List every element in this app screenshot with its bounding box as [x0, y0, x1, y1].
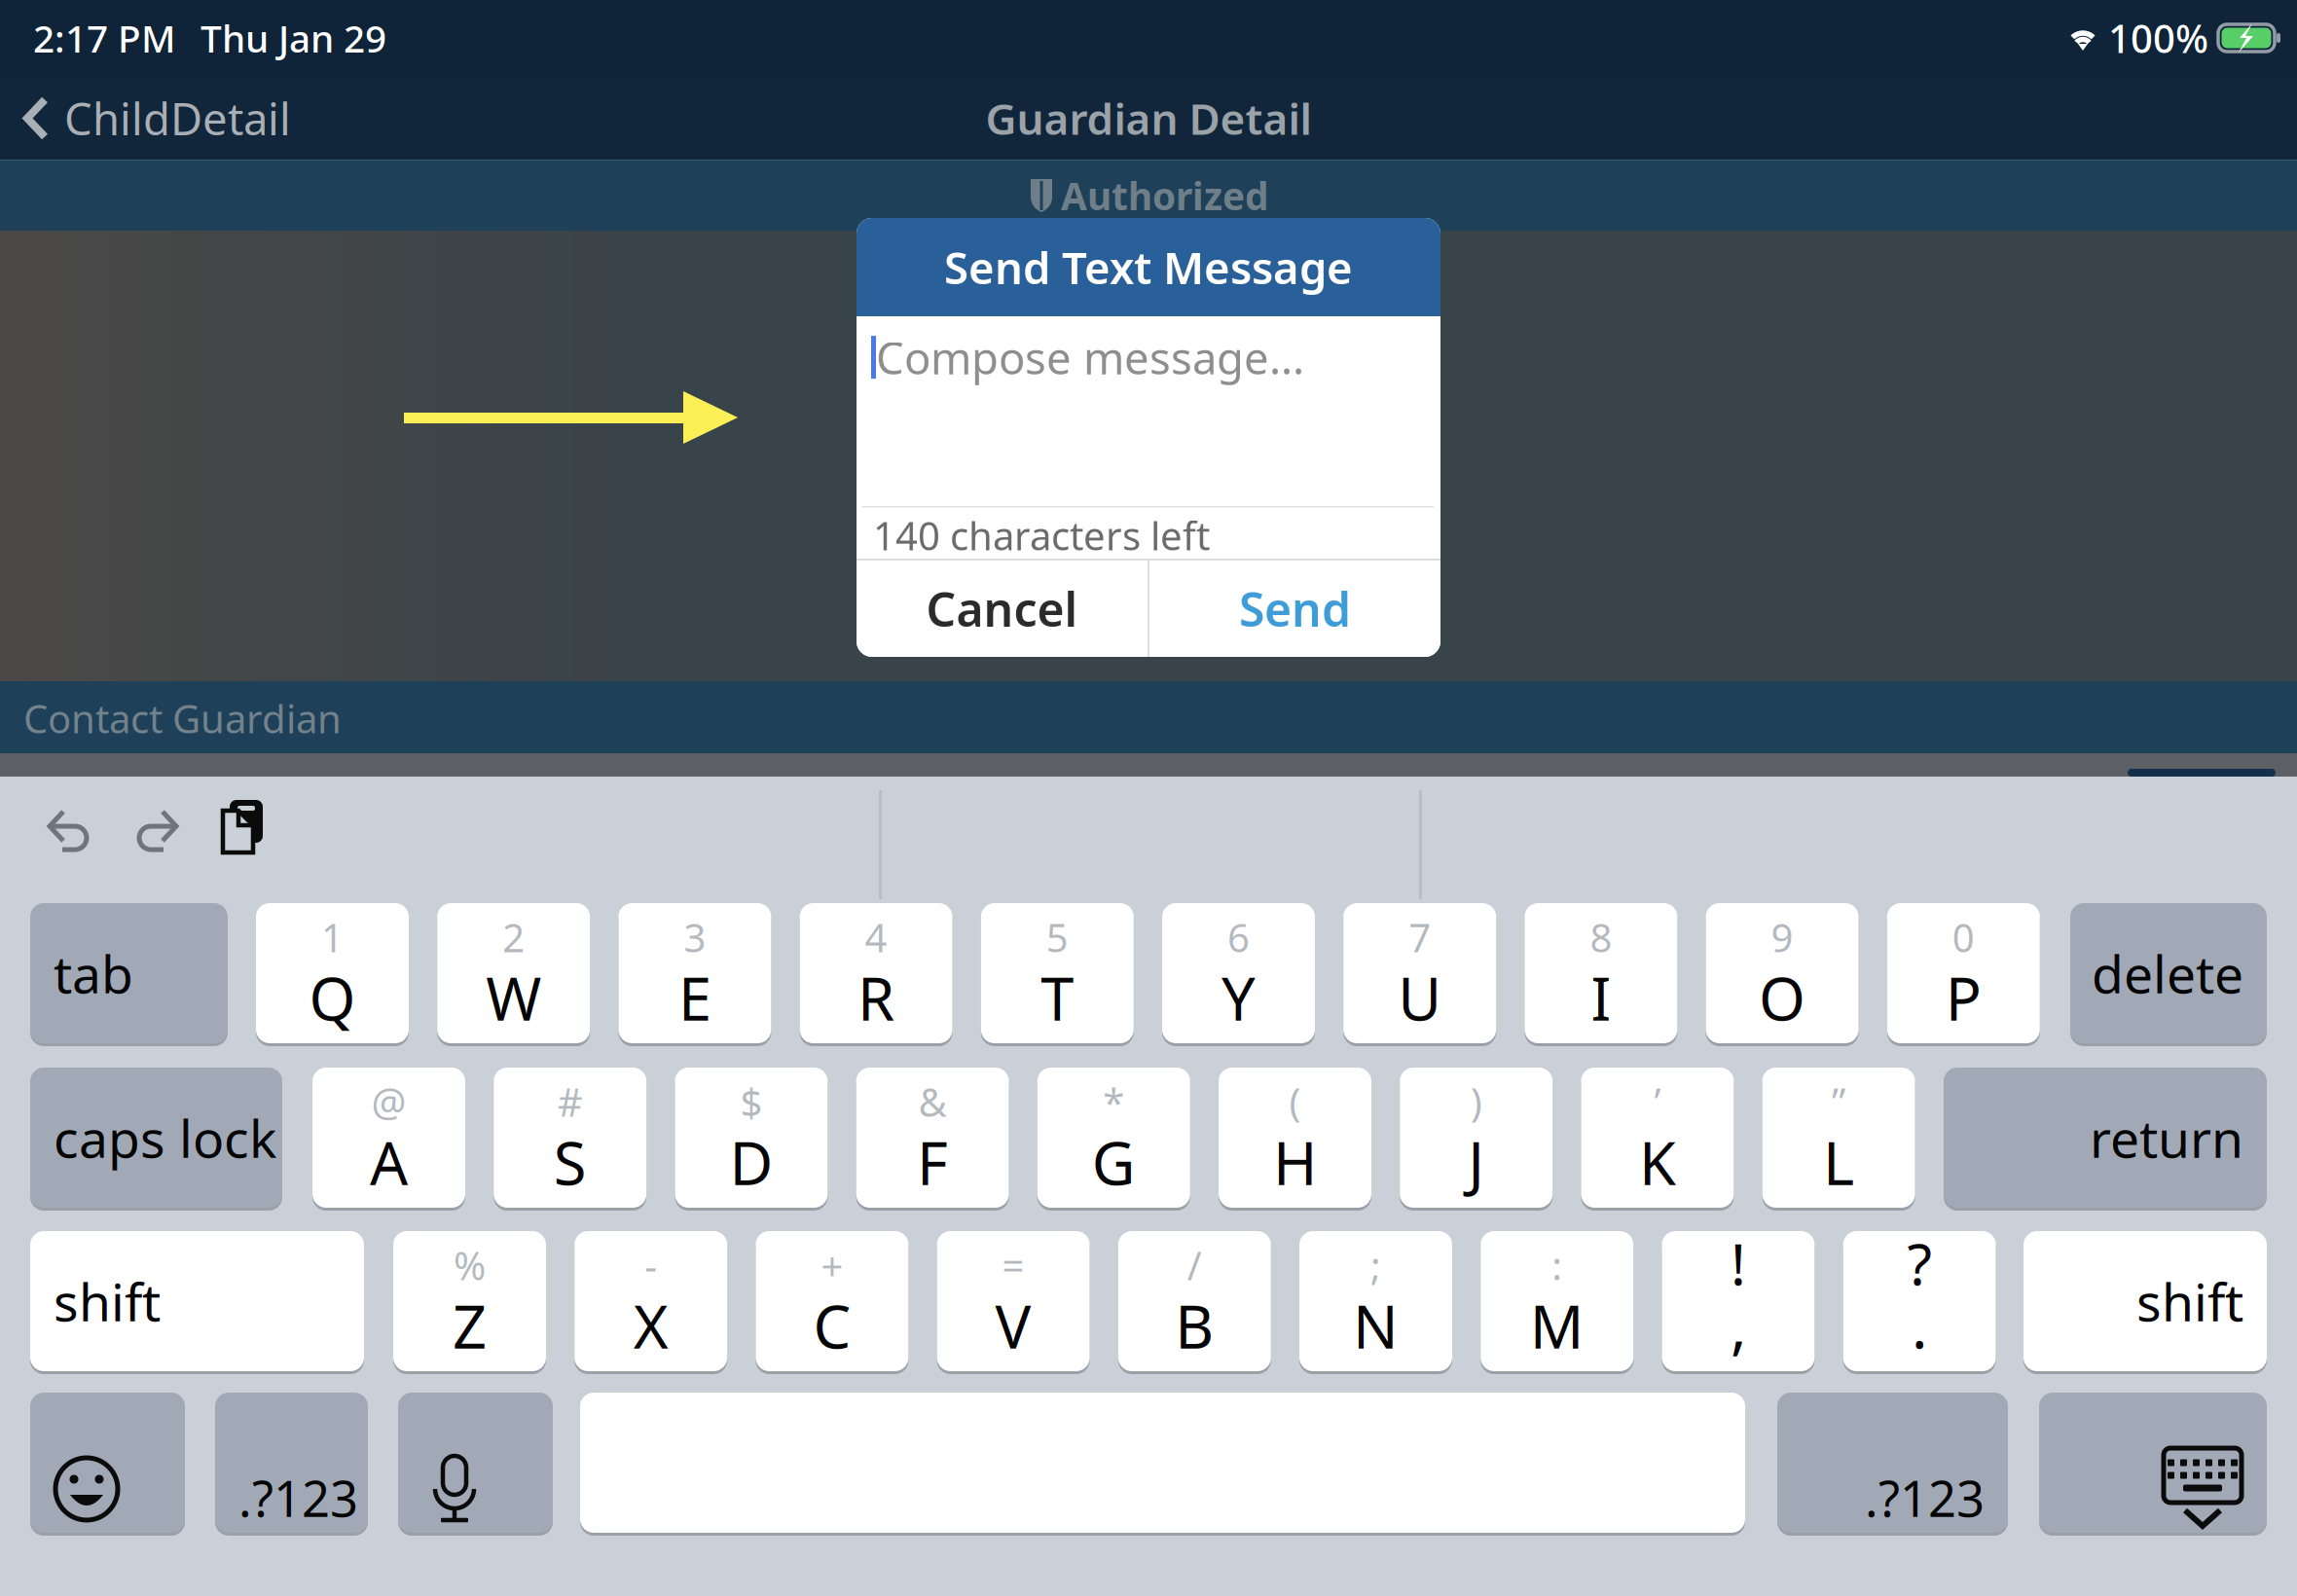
staticText: J	[1468, 1122, 1484, 1202]
button[interactable]: U	[1343, 903, 1496, 1043]
staticText: %	[454, 1239, 486, 1291]
staticText: T	[1041, 958, 1074, 1037]
staticText: Y	[1221, 958, 1256, 1037]
button[interactable]: Dictate	[398, 1393, 553, 1533]
button[interactable]: .	[1843, 1231, 1996, 1371]
button[interactable]: X	[574, 1231, 727, 1371]
button[interactable]: tab	[30, 903, 228, 1043]
button[interactable]: caps lock	[30, 1068, 282, 1208]
staticText: N	[1353, 1286, 1399, 1365]
button[interactable]: P	[1887, 903, 2040, 1043]
button[interactable]: ChildDetail	[0, 76, 307, 161]
staticText: /	[1187, 1239, 1202, 1291]
staticText: Guardian Detail	[985, 90, 1312, 147]
staticText: ;	[1370, 1239, 1381, 1291]
staticText: 9	[1771, 911, 1793, 963]
staticText: )	[1470, 1076, 1482, 1127]
staticText: shift	[54, 1267, 161, 1336]
staticText: -	[645, 1239, 657, 1291]
staticText: V	[995, 1286, 1031, 1365]
staticText: X	[633, 1286, 668, 1365]
button[interactable]: I	[1525, 903, 1677, 1043]
staticText: M	[1530, 1286, 1584, 1365]
button[interactable]: delete	[2070, 903, 2267, 1043]
staticText: A	[370, 1122, 408, 1202]
staticText: 140 characters left	[873, 509, 1210, 561]
button[interactable]: Send	[1149, 561, 1440, 657]
staticText: D	[729, 1122, 773, 1202]
staticText: caps lock	[54, 1103, 276, 1172]
staticText: ’	[1654, 1076, 1661, 1127]
staticText: H	[1273, 1122, 1317, 1202]
button[interactable]: Paste	[220, 800, 271, 858]
button[interactable]: Y	[1162, 903, 1315, 1043]
button[interactable]: Z	[393, 1231, 546, 1371]
staticText: 0	[1952, 911, 1975, 963]
staticText: *	[1103, 1076, 1124, 1127]
button[interactable]: D	[675, 1068, 828, 1208]
button[interactable]: Q	[256, 903, 409, 1043]
button[interactable]: C	[756, 1231, 908, 1371]
staticText: K	[1639, 1122, 1676, 1202]
button[interactable]: Hide Keyboard	[2039, 1393, 2267, 1533]
staticText: 3	[684, 911, 706, 963]
button[interactable]: Contact Guardian	[0, 681, 365, 755]
staticText: &	[918, 1076, 947, 1127]
button[interactable]: V	[937, 1231, 1090, 1371]
button[interactable]: K	[1581, 1068, 1734, 1208]
button[interactable]: W	[437, 903, 590, 1043]
staticText: (	[1289, 1076, 1301, 1127]
button[interactable]: Emoji	[30, 1393, 185, 1533]
button[interactable]: Redo	[135, 809, 180, 853]
staticText: Thu Jan 29	[201, 13, 386, 63]
button[interactable]: .?123	[1777, 1393, 2008, 1533]
staticText: 7	[1409, 911, 1431, 963]
button[interactable]: F	[856, 1068, 1009, 1208]
button[interactable]: Undo	[48, 809, 92, 853]
staticText: 2:17 PM	[33, 13, 175, 63]
button[interactable]: B	[1118, 1231, 1271, 1371]
button[interactable]: R	[800, 903, 952, 1043]
button[interactable]: A	[312, 1068, 465, 1208]
button[interactable]: .?123	[215, 1393, 368, 1533]
button[interactable]: O	[1706, 903, 1859, 1043]
button[interactable]: E	[618, 903, 771, 1043]
staticText: tab	[54, 939, 133, 1008]
staticText: E	[678, 958, 711, 1037]
staticText: delete	[2092, 939, 2243, 1008]
button[interactable]: M	[1481, 1231, 1633, 1371]
staticText: .	[1912, 1286, 1927, 1365]
button[interactable]: N	[1299, 1231, 1452, 1371]
button[interactable]: Cancel	[857, 561, 1148, 657]
staticText: .?123	[1865, 1465, 1985, 1531]
button[interactable]: shift	[30, 1231, 364, 1371]
staticText: L	[1823, 1122, 1854, 1202]
button[interactable]: S	[494, 1068, 646, 1208]
staticText: 6	[1227, 911, 1250, 963]
staticText: ChildDetail	[64, 89, 291, 148]
button[interactable]: shift	[2024, 1231, 2267, 1371]
staticText: G	[1092, 1122, 1136, 1202]
staticText: 4	[865, 911, 887, 963]
staticText: .?123	[238, 1465, 358, 1531]
button[interactable]: G	[1037, 1068, 1190, 1208]
button[interactable]: L	[1762, 1068, 1915, 1208]
button[interactable]: ,	[1662, 1231, 1815, 1371]
staticText: Compose message...	[876, 328, 1304, 387]
staticText: @	[371, 1076, 406, 1127]
button[interactable]: T	[981, 903, 1134, 1043]
staticText: U	[1398, 958, 1442, 1037]
button[interactable]: J	[1400, 1068, 1553, 1208]
button[interactable]: H	[1219, 1068, 1371, 1208]
staticText: B	[1175, 1286, 1214, 1365]
staticText: Authorized	[1061, 171, 1268, 221]
staticText: W	[486, 958, 541, 1037]
staticText: !	[1730, 1225, 1746, 1301]
staticText: $	[740, 1076, 762, 1127]
staticText: Cancel	[926, 578, 1078, 640]
staticText: F	[917, 1122, 948, 1202]
staticText: ”	[1832, 1076, 1845, 1127]
button[interactable]: return	[1944, 1068, 2267, 1208]
staticText: Contact Guardian	[23, 692, 342, 744]
